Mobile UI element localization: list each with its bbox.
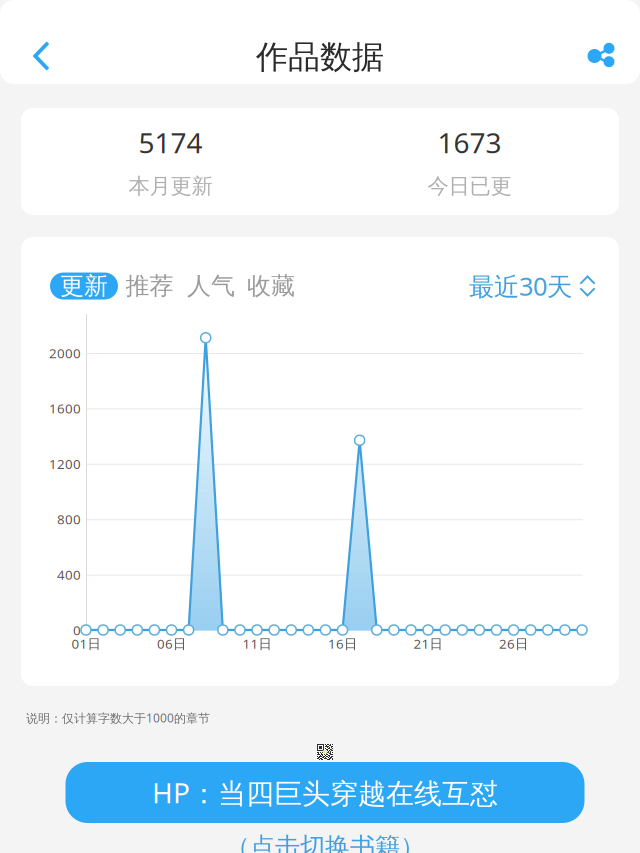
staticText: 800 (57, 510, 81, 528)
button[interactable]: 最近30天 (469, 272, 596, 300)
staticText: （点击切换书籍） (225, 831, 425, 853)
staticText: 收藏 (247, 271, 295, 301)
staticText: 0 (73, 621, 81, 639)
staticText: 作品数据 (256, 37, 384, 77)
staticText: 1600 (49, 399, 81, 417)
staticText: 人气 (187, 271, 235, 301)
button[interactable]: 收藏 (241, 272, 301, 299)
button[interactable]: （点击切换书籍） (225, 832, 425, 853)
staticText: 400 (57, 566, 81, 583)
staticText: 11日 (242, 635, 271, 652)
staticText: 本月更新 (128, 173, 212, 199)
staticText: 说明：仅计算字数大于1000的章节 (26, 710, 210, 726)
staticText: 今日已更 (427, 173, 511, 199)
button[interactable]: Back (14, 29, 68, 83)
staticText: 26日 (499, 635, 528, 652)
button[interactable]: HP：当四巨头穿越在线互怼 (65, 762, 584, 823)
button[interactable]: 人气 (181, 272, 241, 299)
staticText: 06日 (157, 635, 186, 652)
staticText: HP：当四巨头穿越在线互怼 (152, 774, 498, 811)
staticText: 5174 (138, 124, 202, 161)
button[interactable]: 推荐 (118, 272, 181, 299)
staticText: 1200 (49, 455, 81, 473)
staticText: 16日 (328, 635, 357, 652)
staticText: 最近30天 (469, 269, 572, 303)
staticText: 推荐 (125, 271, 173, 301)
button[interactable]: 更新 (50, 272, 118, 299)
button[interactable]: Share (572, 29, 626, 83)
staticText: 更新 (60, 271, 108, 301)
staticText: 01日 (71, 635, 100, 652)
staticText: 2000 (49, 344, 81, 362)
staticText: 1673 (437, 124, 501, 161)
staticText: 21日 (414, 635, 443, 652)
